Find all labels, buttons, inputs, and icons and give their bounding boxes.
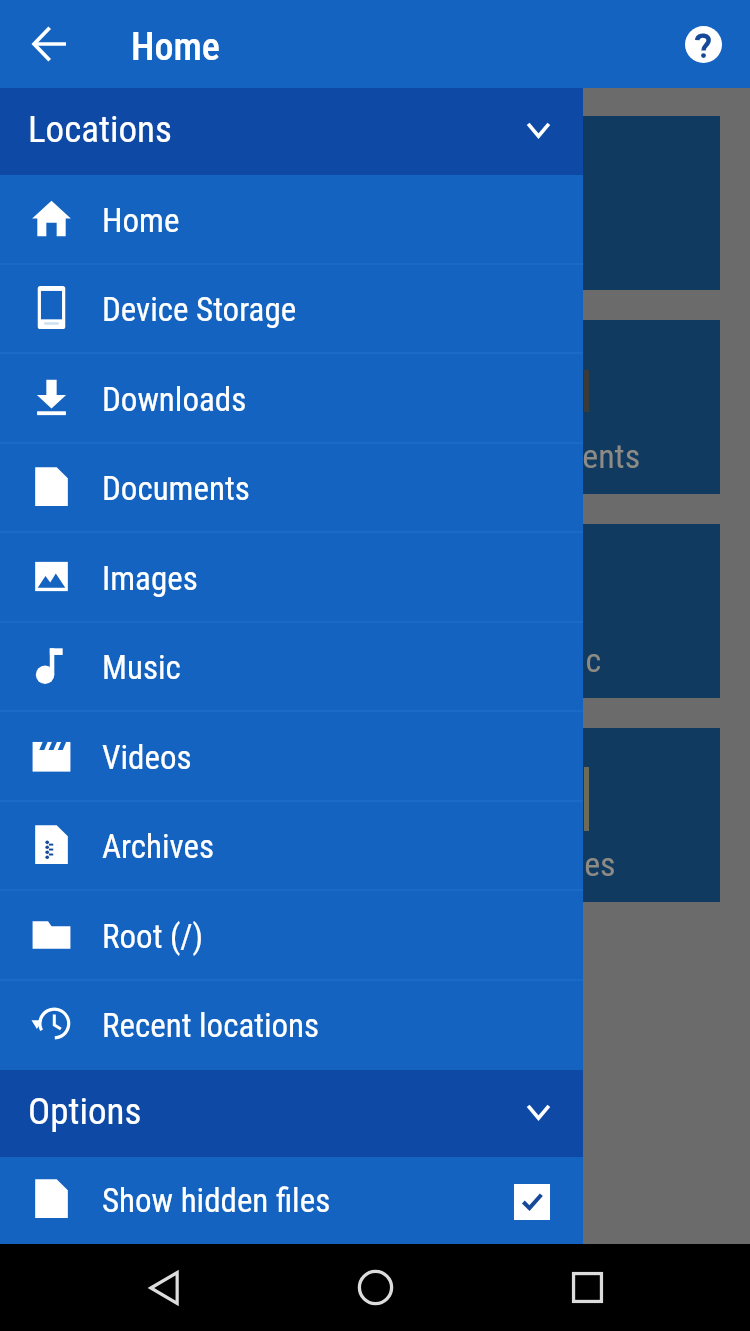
staticText: Home bbox=[102, 201, 180, 240]
button[interactable]: Locations bbox=[0, 88, 583, 175]
staticText: Downloads bbox=[102, 380, 247, 419]
button[interactable]: Videos bbox=[0, 712, 583, 802]
button[interactable]: Root (/) bbox=[0, 891, 583, 981]
button[interactable]: Options bbox=[0, 1070, 583, 1157]
staticText: Videos bbox=[102, 738, 192, 777]
staticText: Show hidden files bbox=[102, 1181, 331, 1220]
button[interactable]: Recent locations bbox=[0, 981, 583, 1070]
staticText: Locations bbox=[28, 108, 172, 151]
button[interactable]: Home bbox=[0, 175, 583, 265]
button[interactable]: Show hidden files bbox=[0, 1157, 583, 1244]
staticText: Images bbox=[102, 559, 198, 598]
button[interactable]: Help bbox=[663, 4, 743, 84]
button[interactable]: Recents bbox=[539, 1244, 635, 1331]
button[interactable]: Back bbox=[116, 1244, 212, 1331]
staticText: Device Storage bbox=[102, 290, 297, 329]
staticText: Music bbox=[102, 648, 181, 687]
staticText: Documents bbox=[102, 469, 250, 508]
staticText: Recent locations bbox=[102, 1006, 320, 1045]
staticText: Documents bbox=[488, 436, 641, 476]
staticText: Archives bbox=[102, 827, 214, 866]
button[interactable]: Documents bbox=[0, 444, 583, 533]
staticText: Home bbox=[131, 25, 220, 70]
staticText: Root (/) bbox=[102, 917, 204, 956]
staticText: Images bbox=[517, 844, 616, 884]
button[interactable]: Images bbox=[0, 533, 583, 623]
button[interactable]: Music bbox=[0, 623, 583, 712]
button[interactable]: Back bbox=[4, 0, 94, 88]
staticText: Options bbox=[28, 1090, 142, 1133]
staticText: Music bbox=[520, 640, 602, 680]
button[interactable]: Archives bbox=[0, 802, 583, 891]
button[interactable]: Device Storage bbox=[0, 265, 583, 354]
button[interactable]: Home bbox=[327, 1244, 423, 1331]
button[interactable]: Downloads bbox=[0, 354, 583, 444]
